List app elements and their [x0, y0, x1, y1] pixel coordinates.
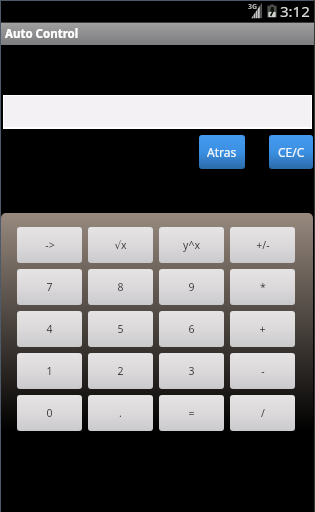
- staticText: Atras: [207, 144, 237, 160]
- staticText: y^x: [183, 238, 200, 252]
- button[interactable]: √x: [88, 227, 153, 263]
- staticText: =: [188, 406, 195, 420]
- button[interactable]: +/-: [230, 227, 295, 263]
- staticText: 3G: [248, 2, 258, 12]
- button[interactable]: CE/C: [269, 135, 313, 169]
- staticText: +/-: [256, 238, 270, 252]
- button[interactable]: .: [88, 395, 153, 431]
- staticText: 1: [46, 364, 53, 378]
- staticText: .: [119, 406, 122, 420]
- staticText: 0: [46, 406, 53, 420]
- staticText: 5: [117, 322, 124, 336]
- staticText: 2: [117, 364, 124, 378]
- staticText: √x: [114, 238, 127, 252]
- button[interactable]: 0: [17, 395, 82, 431]
- staticText: +: [259, 322, 266, 336]
- button[interactable]: 8: [88, 269, 153, 305]
- staticText: *: [260, 280, 266, 294]
- button[interactable]: =: [159, 395, 224, 431]
- button[interactable]: 9: [159, 269, 224, 305]
- button[interactable]: 6: [159, 311, 224, 347]
- button[interactable]: 4: [17, 311, 82, 347]
- button[interactable]: 3: [159, 353, 224, 389]
- button[interactable]: ->: [17, 227, 82, 263]
- staticText: -: [261, 364, 265, 378]
- button[interactable]: 7: [17, 269, 82, 305]
- staticText: 6: [188, 322, 195, 336]
- staticText: 3:12: [280, 1, 310, 21]
- staticText: /: [261, 406, 265, 420]
- staticText: 7: [46, 280, 53, 294]
- button[interactable]: 2: [88, 353, 153, 389]
- staticText: 4: [46, 322, 53, 336]
- button[interactable]: Atras: [199, 135, 245, 169]
- staticText: CE/C: [278, 144, 305, 160]
- button[interactable]: 5: [88, 311, 153, 347]
- staticText: 8: [117, 280, 124, 294]
- button[interactable]: *: [230, 269, 295, 305]
- button[interactable]: /: [230, 395, 295, 431]
- staticText: ->: [45, 238, 55, 252]
- button[interactable]: 1: [17, 353, 82, 389]
- button[interactable]: y^x: [159, 227, 224, 263]
- button[interactable]: +: [230, 311, 295, 347]
- button[interactable]: -: [230, 353, 295, 389]
- staticText: 3: [188, 364, 195, 378]
- staticText: 9: [188, 280, 195, 294]
- staticText: Auto Control: [5, 26, 79, 42]
